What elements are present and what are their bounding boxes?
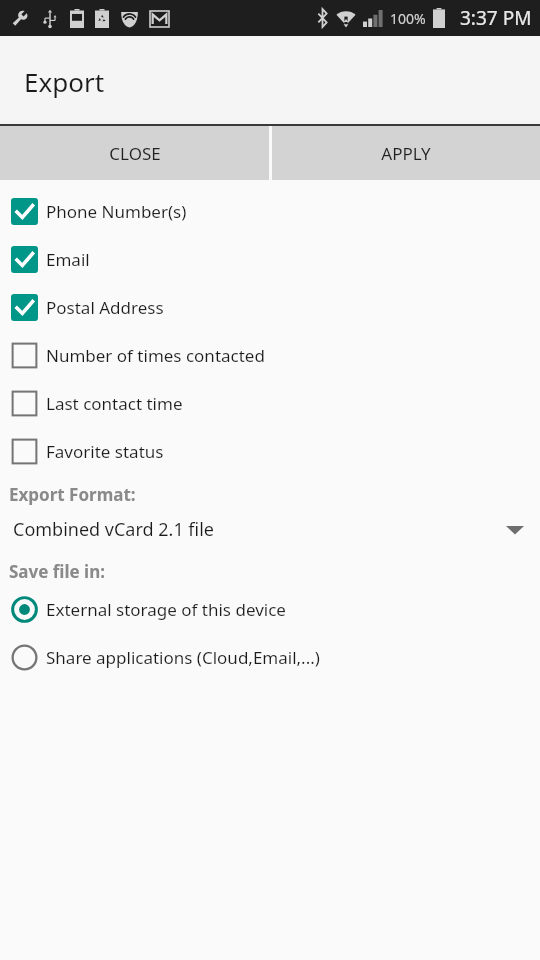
staticText: Email xyxy=(46,248,90,271)
button[interactable]: CLOSE xyxy=(0,126,269,180)
staticText: APPLY xyxy=(381,142,431,165)
button[interactable]: Email xyxy=(0,235,540,283)
button[interactable]: Number of times contacted xyxy=(0,331,540,379)
staticText: Phone Number(s) xyxy=(46,200,187,223)
button[interactable]: Favorite status xyxy=(0,427,540,475)
button[interactable]: External storage of this device xyxy=(0,585,540,633)
other: Open format dropdown xyxy=(506,523,524,535)
staticText: Save file in: xyxy=(9,560,106,583)
staticText: Export xyxy=(24,64,105,99)
button[interactable]: Share applications (Cloud,Email,...) xyxy=(0,633,540,681)
staticText: Export Format: xyxy=(9,483,136,506)
staticText: CLOSE xyxy=(109,142,161,165)
button[interactable]: Combined vCard 2.1 file xyxy=(0,508,540,550)
button[interactable]: Last contact time xyxy=(0,379,540,427)
staticText: 100% xyxy=(390,9,426,28)
button[interactable]: Phone Number(s) xyxy=(0,187,540,235)
staticText: Favorite status xyxy=(46,440,164,463)
staticText: Share applications (Cloud,Email,...) xyxy=(46,646,320,669)
staticText: Combined vCard 2.1 file xyxy=(13,517,506,542)
staticText: Number of times contacted xyxy=(46,344,265,367)
staticText: Last contact time xyxy=(46,392,183,415)
staticText: Postal Address xyxy=(46,296,164,319)
staticText: External storage of this device xyxy=(46,598,286,621)
button[interactable]: Postal Address xyxy=(0,283,540,331)
button[interactable]: APPLY xyxy=(272,126,540,180)
staticText: 3:37 PM xyxy=(460,5,532,31)
